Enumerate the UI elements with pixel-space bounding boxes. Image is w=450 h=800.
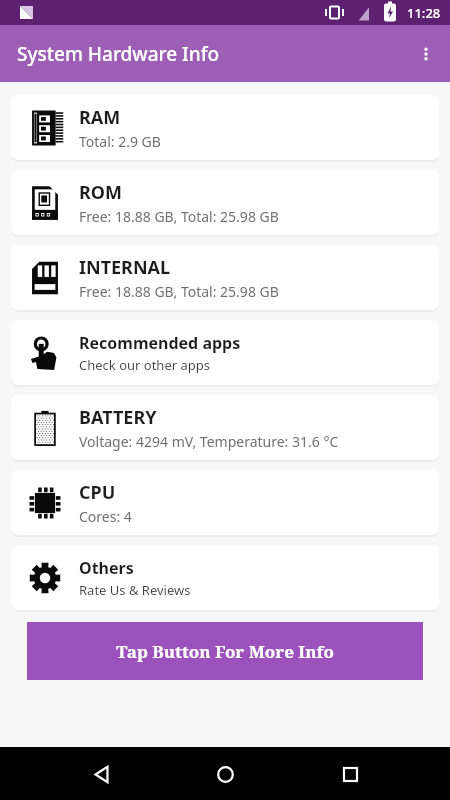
staticText: RAM: [79, 105, 121, 130]
button[interactable]: Recent apps: [326, 750, 374, 798]
staticText: Free: 18.88 GB, Total: 25.98 GB: [79, 282, 279, 301]
staticText: Voltage: 4294 mV, Temperature: 31.6 °C: [79, 432, 339, 451]
button[interactable]: ROM: [11, 170, 439, 235]
staticText: CPU: [79, 480, 116, 505]
button[interactable]: RAM: [11, 95, 439, 160]
staticText: Cores: 4: [79, 507, 132, 526]
button[interactable]: Home: [201, 750, 249, 798]
button[interactable]: Tap Button For More Info: [27, 622, 423, 680]
button[interactable]: INTERNAL: [11, 245, 439, 310]
staticText: INTERNAL: [79, 255, 171, 280]
staticText: BATTERY: [79, 405, 157, 430]
button[interactable]: Recommended apps: [11, 320, 439, 385]
staticText: ROM: [79, 180, 123, 205]
staticText: Rate Us & Reviews: [79, 581, 191, 599]
staticText: Others: [79, 557, 134, 579]
staticText: 11:28: [407, 4, 441, 22]
button[interactable]: Others: [11, 545, 439, 610]
staticText: Check our other apps: [79, 356, 210, 374]
staticText: Free: 18.88 GB, Total: 25.98 GB: [79, 207, 279, 226]
button[interactable]: More options: [402, 30, 450, 78]
button[interactable]: BATTERY: [11, 395, 439, 460]
staticText: Total: 2.9 GB: [79, 132, 161, 151]
staticText: Recommended apps: [79, 332, 241, 354]
button[interactable]: CPU: [11, 470, 439, 535]
staticText: Tap Button For More Info: [116, 640, 334, 663]
button[interactable]: Back: [77, 750, 125, 798]
staticText: System Hardware Info: [17, 41, 220, 67]
